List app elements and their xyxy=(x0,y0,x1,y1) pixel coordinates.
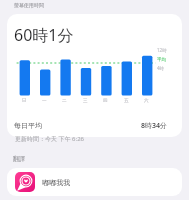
button[interactable]: 60時1分 xyxy=(7,14,182,137)
staticText: 平均 xyxy=(157,57,166,63)
staticText: 60時1分 xyxy=(14,24,74,46)
staticText: 翻譯 xyxy=(13,155,25,163)
staticText: 三 xyxy=(83,98,88,104)
staticText: 日 xyxy=(22,98,27,104)
staticText: 一 xyxy=(42,98,47,104)
staticText: 8時34分 xyxy=(141,121,168,131)
staticText: 二 xyxy=(62,98,67,104)
staticText: 螢幕使用時間 xyxy=(14,2,44,8)
staticText: 五 xyxy=(124,98,129,104)
staticText: 四 xyxy=(103,98,108,104)
button[interactable]: 嘟嘟我我 xyxy=(7,168,182,196)
staticText: 12時 xyxy=(157,47,167,53)
staticText: 更新時間：今天 下午 6:26 xyxy=(15,135,85,143)
staticText: 每日平均 xyxy=(14,121,42,130)
staticText: 六 xyxy=(144,98,149,104)
staticText: 4時 xyxy=(157,65,165,71)
staticText: 嘟嘟我我 xyxy=(42,178,70,187)
